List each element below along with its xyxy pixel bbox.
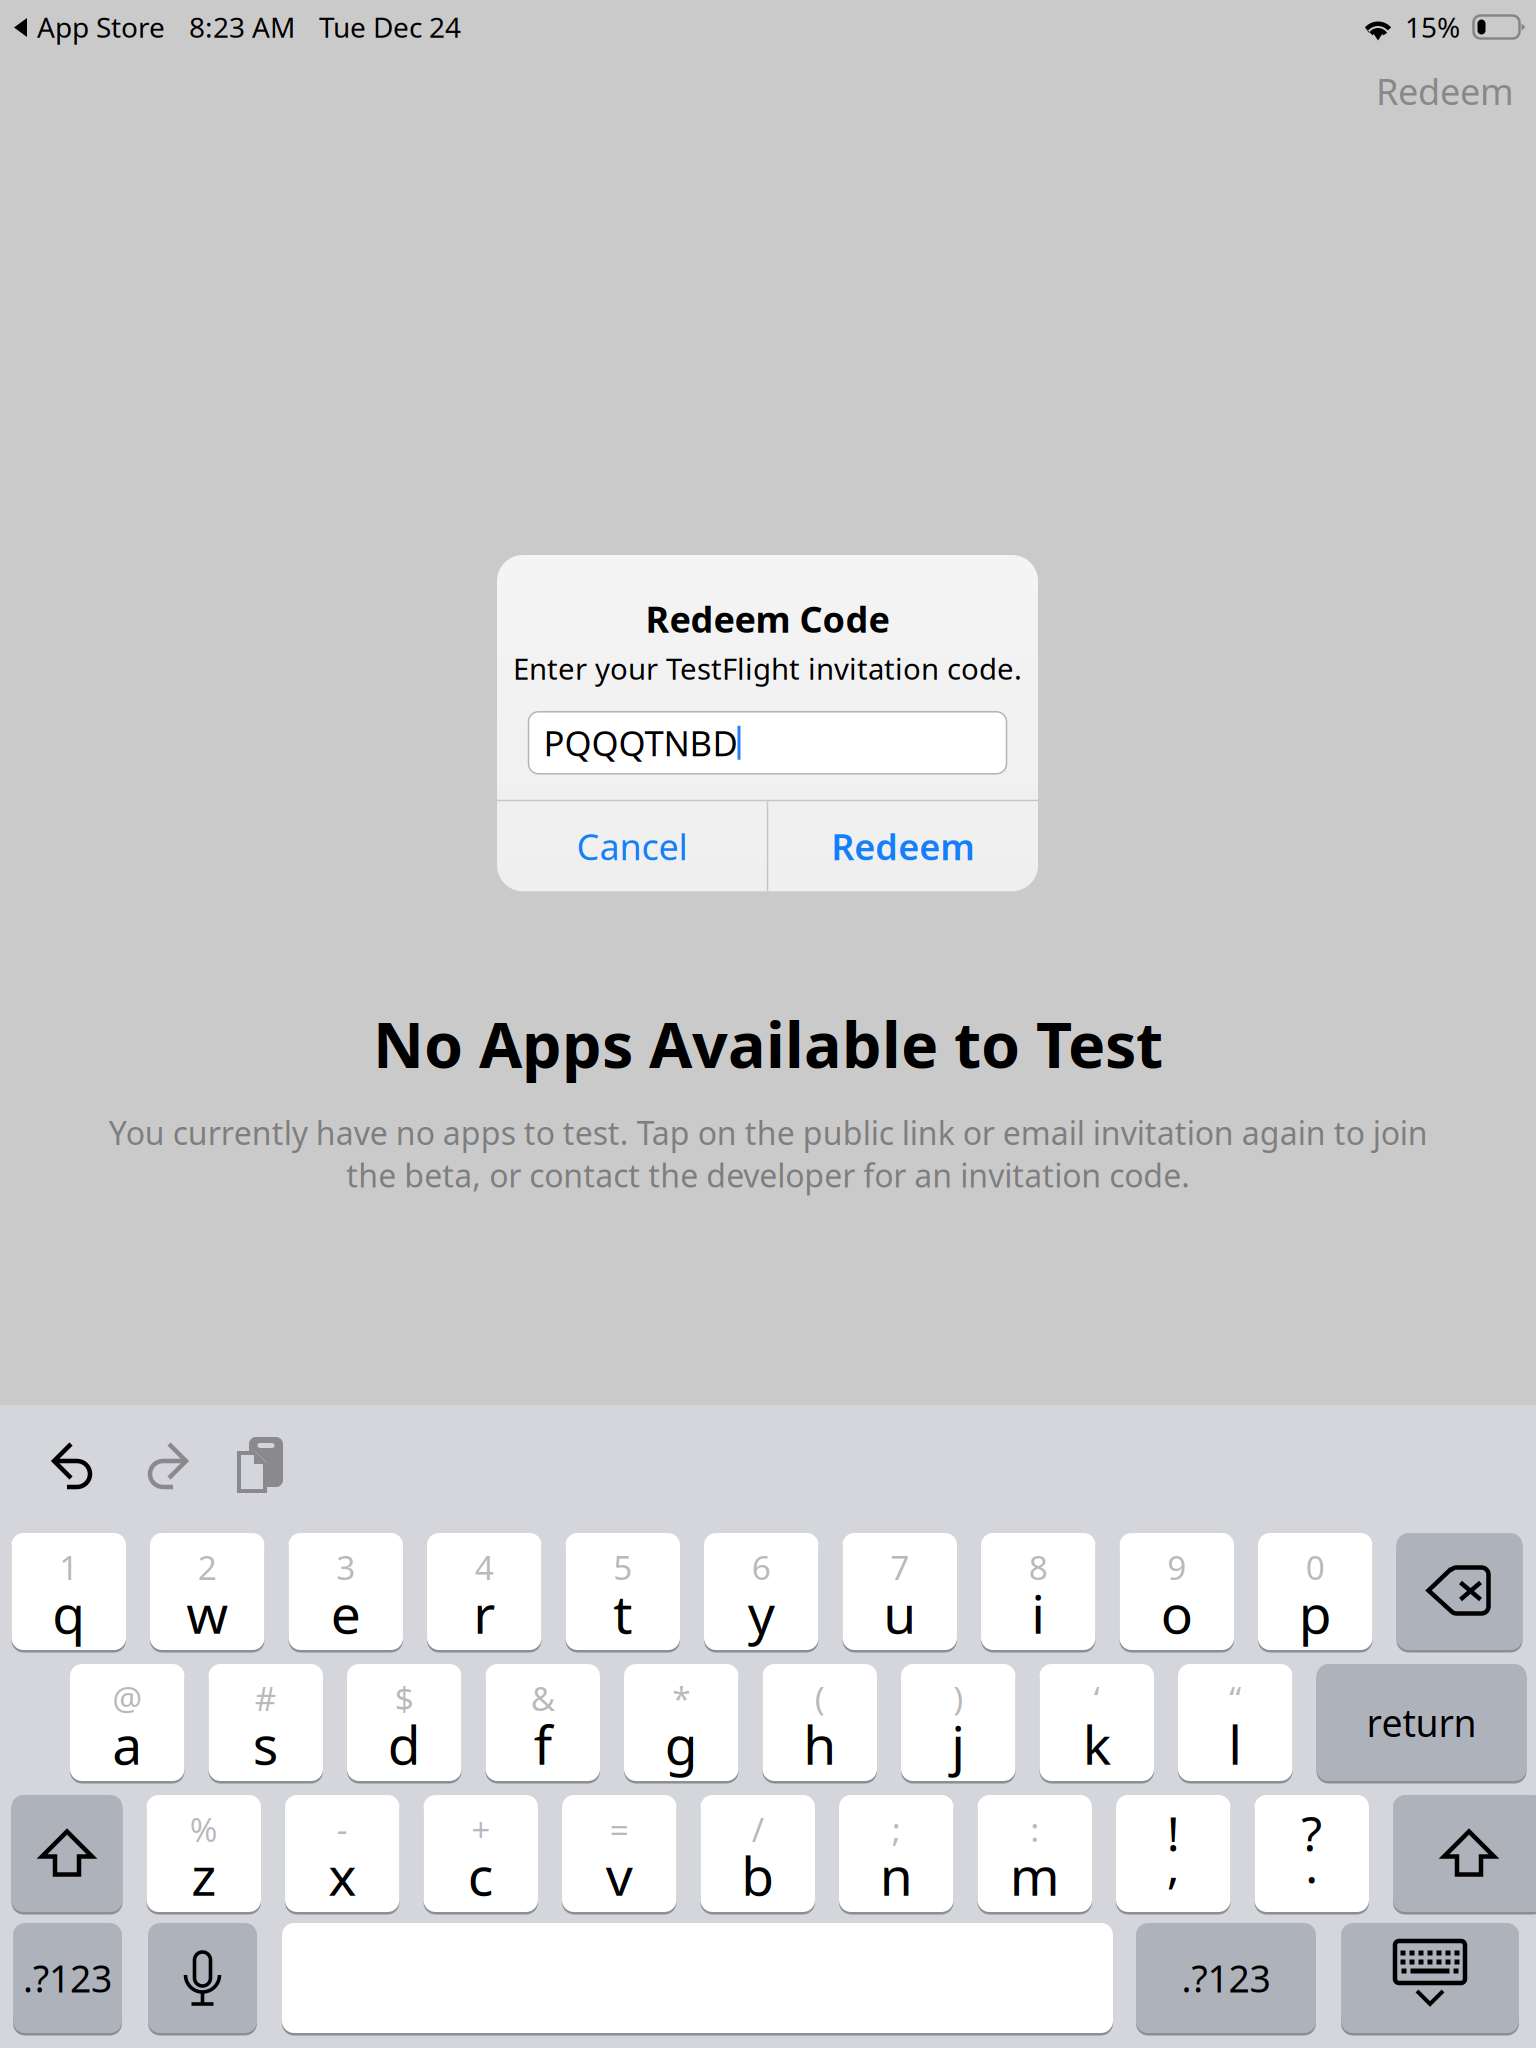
staticText: x [328, 1840, 356, 1910]
staticText: v [606, 1840, 633, 1910]
button[interactable]: Hide Keyboard [1341, 1923, 1519, 2033]
button[interactable]: .?123 [13, 1923, 122, 2033]
staticText: 6 [752, 1545, 771, 1589]
button[interactable]: .?123 [1136, 1923, 1316, 2033]
staticText: , [1167, 1833, 1180, 1897]
button[interactable]: Delete [1396, 1533, 1522, 1650]
staticText: # [255, 1676, 277, 1720]
staticText: ! [1167, 1801, 1180, 1865]
button[interactable]: % [146, 1795, 261, 1912]
button[interactable]: 7 [842, 1533, 957, 1650]
button[interactable]: ) [901, 1664, 1015, 1781]
staticText: n [880, 1840, 913, 1910]
button[interactable]: Cancel [497, 801, 767, 891]
staticText: & [531, 1676, 555, 1720]
staticText: 3 [336, 1545, 355, 1589]
staticText: j [951, 1709, 965, 1779]
staticText: w [186, 1578, 228, 1648]
staticText: c [468, 1840, 494, 1910]
staticText: e [331, 1578, 361, 1648]
button[interactable]: ( [762, 1664, 877, 1781]
staticText: Cancel [576, 822, 687, 870]
staticText: @ [112, 1676, 142, 1720]
button[interactable]: Redo [130, 1436, 206, 1498]
button[interactable]: ! [1116, 1795, 1230, 1912]
button[interactable]: * [624, 1664, 738, 1781]
button[interactable]: 5 [565, 1533, 680, 1650]
staticText: % [190, 1807, 218, 1851]
staticText: ? [1301, 1801, 1322, 1865]
button[interactable]: Shift [11, 1795, 122, 1912]
button[interactable]: Paste [222, 1436, 298, 1498]
staticText: y [748, 1578, 775, 1648]
staticText: = [610, 1807, 629, 1851]
staticText: return [1366, 1698, 1476, 1747]
button[interactable]: Redeem [768, 801, 1038, 891]
button[interactable]: ; [839, 1795, 953, 1912]
staticText: 15% [1405, 8, 1460, 46]
staticText: App Store [37, 8, 165, 46]
button[interactable]: @ [70, 1664, 184, 1781]
button[interactable]: - [285, 1795, 399, 1912]
button[interactable]: ? [1254, 1795, 1369, 1912]
staticText: Redeem Code [645, 595, 889, 643]
staticText: ) [953, 1676, 963, 1720]
staticText: r [473, 1578, 495, 1648]
staticText: PQQQTNBD [543, 720, 737, 766]
staticText: d [388, 1709, 421, 1779]
button[interactable]: & [485, 1664, 600, 1781]
button[interactable]: : [977, 1795, 1092, 1912]
staticText: k [1083, 1709, 1111, 1779]
button[interactable]: Shift [1393, 1795, 1536, 1912]
button[interactable]: 2 [150, 1533, 264, 1650]
staticText: / [752, 1807, 764, 1851]
staticText: 5 [613, 1545, 632, 1589]
button[interactable]: 4 [427, 1533, 541, 1650]
button[interactable]: Undo [38, 1436, 114, 1498]
staticText: Redeem [1376, 67, 1514, 115]
staticText: z [191, 1840, 216, 1910]
button[interactable]: = [562, 1795, 676, 1912]
button[interactable]: 8 [981, 1533, 1095, 1650]
button[interactable]: + [423, 1795, 538, 1912]
button[interactable]: 6 [704, 1533, 818, 1650]
button[interactable]: Dictate [148, 1923, 257, 2033]
staticText: ( [815, 1676, 825, 1720]
staticText: 8 [1029, 1545, 1048, 1589]
staticText: t [613, 1578, 632, 1648]
staticText: * [672, 1676, 690, 1720]
button[interactable]: “ [1178, 1664, 1292, 1781]
button[interactable]: / [700, 1795, 815, 1912]
staticText: 9 [1167, 1545, 1186, 1589]
staticText: 4 [475, 1545, 494, 1589]
staticText: 0 [1306, 1545, 1325, 1589]
staticText: u [883, 1578, 916, 1648]
button[interactable]: 9 [1119, 1533, 1234, 1650]
button[interactable]: Redeem [1254, 62, 1514, 120]
staticText: . [1305, 1833, 1318, 1897]
staticText: b [741, 1840, 774, 1910]
button[interactable]: # [208, 1664, 323, 1781]
staticText: h [803, 1709, 836, 1779]
staticText: a [112, 1709, 142, 1779]
staticText: .?123 [1181, 1953, 1270, 2003]
staticText: o [1161, 1578, 1193, 1648]
staticText: + [471, 1807, 490, 1851]
button[interactable]: return [1316, 1664, 1526, 1781]
button[interactable]: 3 [288, 1533, 403, 1650]
staticText: l [1228, 1709, 1242, 1779]
button[interactable]: 1 [11, 1533, 126, 1650]
staticText: “ [1229, 1676, 1241, 1720]
staticText: Redeem [831, 822, 975, 870]
button[interactable]: ‘ [1039, 1664, 1154, 1781]
staticText: f [534, 1709, 552, 1779]
staticText: Tue Dec 24 [319, 8, 461, 46]
button[interactable]: 0 [1258, 1533, 1372, 1650]
staticText: g [665, 1709, 698, 1779]
button[interactable]: $ [347, 1664, 461, 1781]
staticText: 7 [890, 1545, 909, 1589]
staticText: ; [892, 1807, 901, 1851]
staticText: i [1031, 1578, 1045, 1648]
staticText: 1 [59, 1545, 78, 1589]
